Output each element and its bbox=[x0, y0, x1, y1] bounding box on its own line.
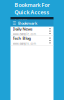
button[interactable]: Tech Blog bbox=[10, 36, 53, 45]
staticText: www.example.com bbox=[12, 42, 35, 45]
staticText: Daily News bbox=[12, 26, 32, 31]
button[interactable]: Daily News bbox=[10, 27, 53, 36]
staticText: www.example.com bbox=[12, 32, 35, 36]
staticText: Bookmark For Quick Access Later bbox=[14, 1, 49, 23]
staticText: ☰ bbox=[12, 21, 16, 25]
staticText: Bookmark bbox=[18, 20, 37, 26]
staticText: Tech Blog bbox=[12, 36, 31, 41]
